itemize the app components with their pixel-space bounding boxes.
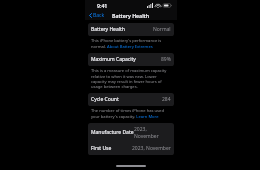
staticText: Maximum Capacity <box>91 56 136 63</box>
staticText: The number of times iPhone has used your… <box>91 108 171 119</box>
staticText: First Use <box>91 145 112 152</box>
staticText: 9:41 <box>97 2 108 9</box>
button[interactable]: First Use <box>88 142 174 155</box>
staticText: 284 <box>162 96 171 103</box>
button[interactable]: Maximum Capacity <box>88 53 174 66</box>
staticText: Normal <box>153 26 171 33</box>
staticText: Battery Health <box>112 12 150 19</box>
button[interactable]: Manufacture Date <box>88 123 174 142</box>
staticText: Battery Health <box>91 26 125 33</box>
staticText: This iPhone battery's performance is nor… <box>91 38 171 49</box>
staticText: 2023, November <box>132 145 171 152</box>
staticText: Manufacture Date <box>91 129 134 136</box>
staticText: Back <box>93 12 105 19</box>
staticText: Cycle Count <box>91 96 119 103</box>
button[interactable]: Back <box>88 11 106 20</box>
staticText: 89% <box>161 56 171 63</box>
staticText: This is a measure of maximum capacity re… <box>91 68 171 89</box>
button[interactable]: Battery Health <box>88 23 174 36</box>
staticText: 2023, November <box>134 126 171 139</box>
button[interactable]: Cycle Count <box>88 93 174 106</box>
